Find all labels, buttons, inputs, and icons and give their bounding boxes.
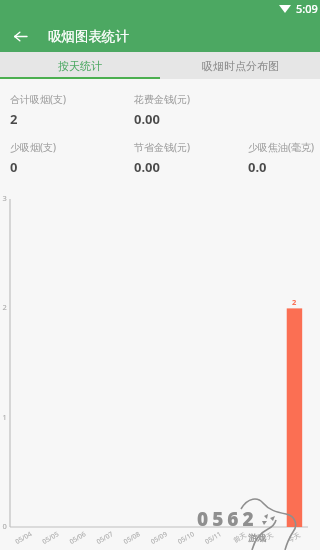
staticText: 0.00 — [134, 158, 160, 176]
button[interactable]: Back — [8, 24, 32, 48]
staticText: 少吸烟(支) — [10, 140, 56, 154]
staticText: 0.0 — [248, 158, 267, 176]
staticText: 0 — [10, 158, 18, 176]
staticText: 0.00 — [134, 110, 160, 128]
staticText: 节省金钱(元) — [134, 140, 190, 154]
staticText: 合计吸烟(支) — [10, 92, 66, 106]
staticText: 按天统计 — [58, 59, 102, 73]
button[interactable]: 吸烟时点分布图 — [160, 52, 320, 79]
button[interactable]: 按天统计 — [0, 52, 160, 79]
staticText: 2 — [10, 110, 18, 128]
staticText: 少吸焦油(毫克) — [248, 140, 314, 154]
staticText: 花费金钱(元) — [134, 92, 190, 106]
staticText: 5:09 — [296, 1, 318, 16]
staticText: 吸烟时点分布图 — [202, 59, 279, 73]
staticText: 吸烟图表统计 — [48, 28, 129, 45]
